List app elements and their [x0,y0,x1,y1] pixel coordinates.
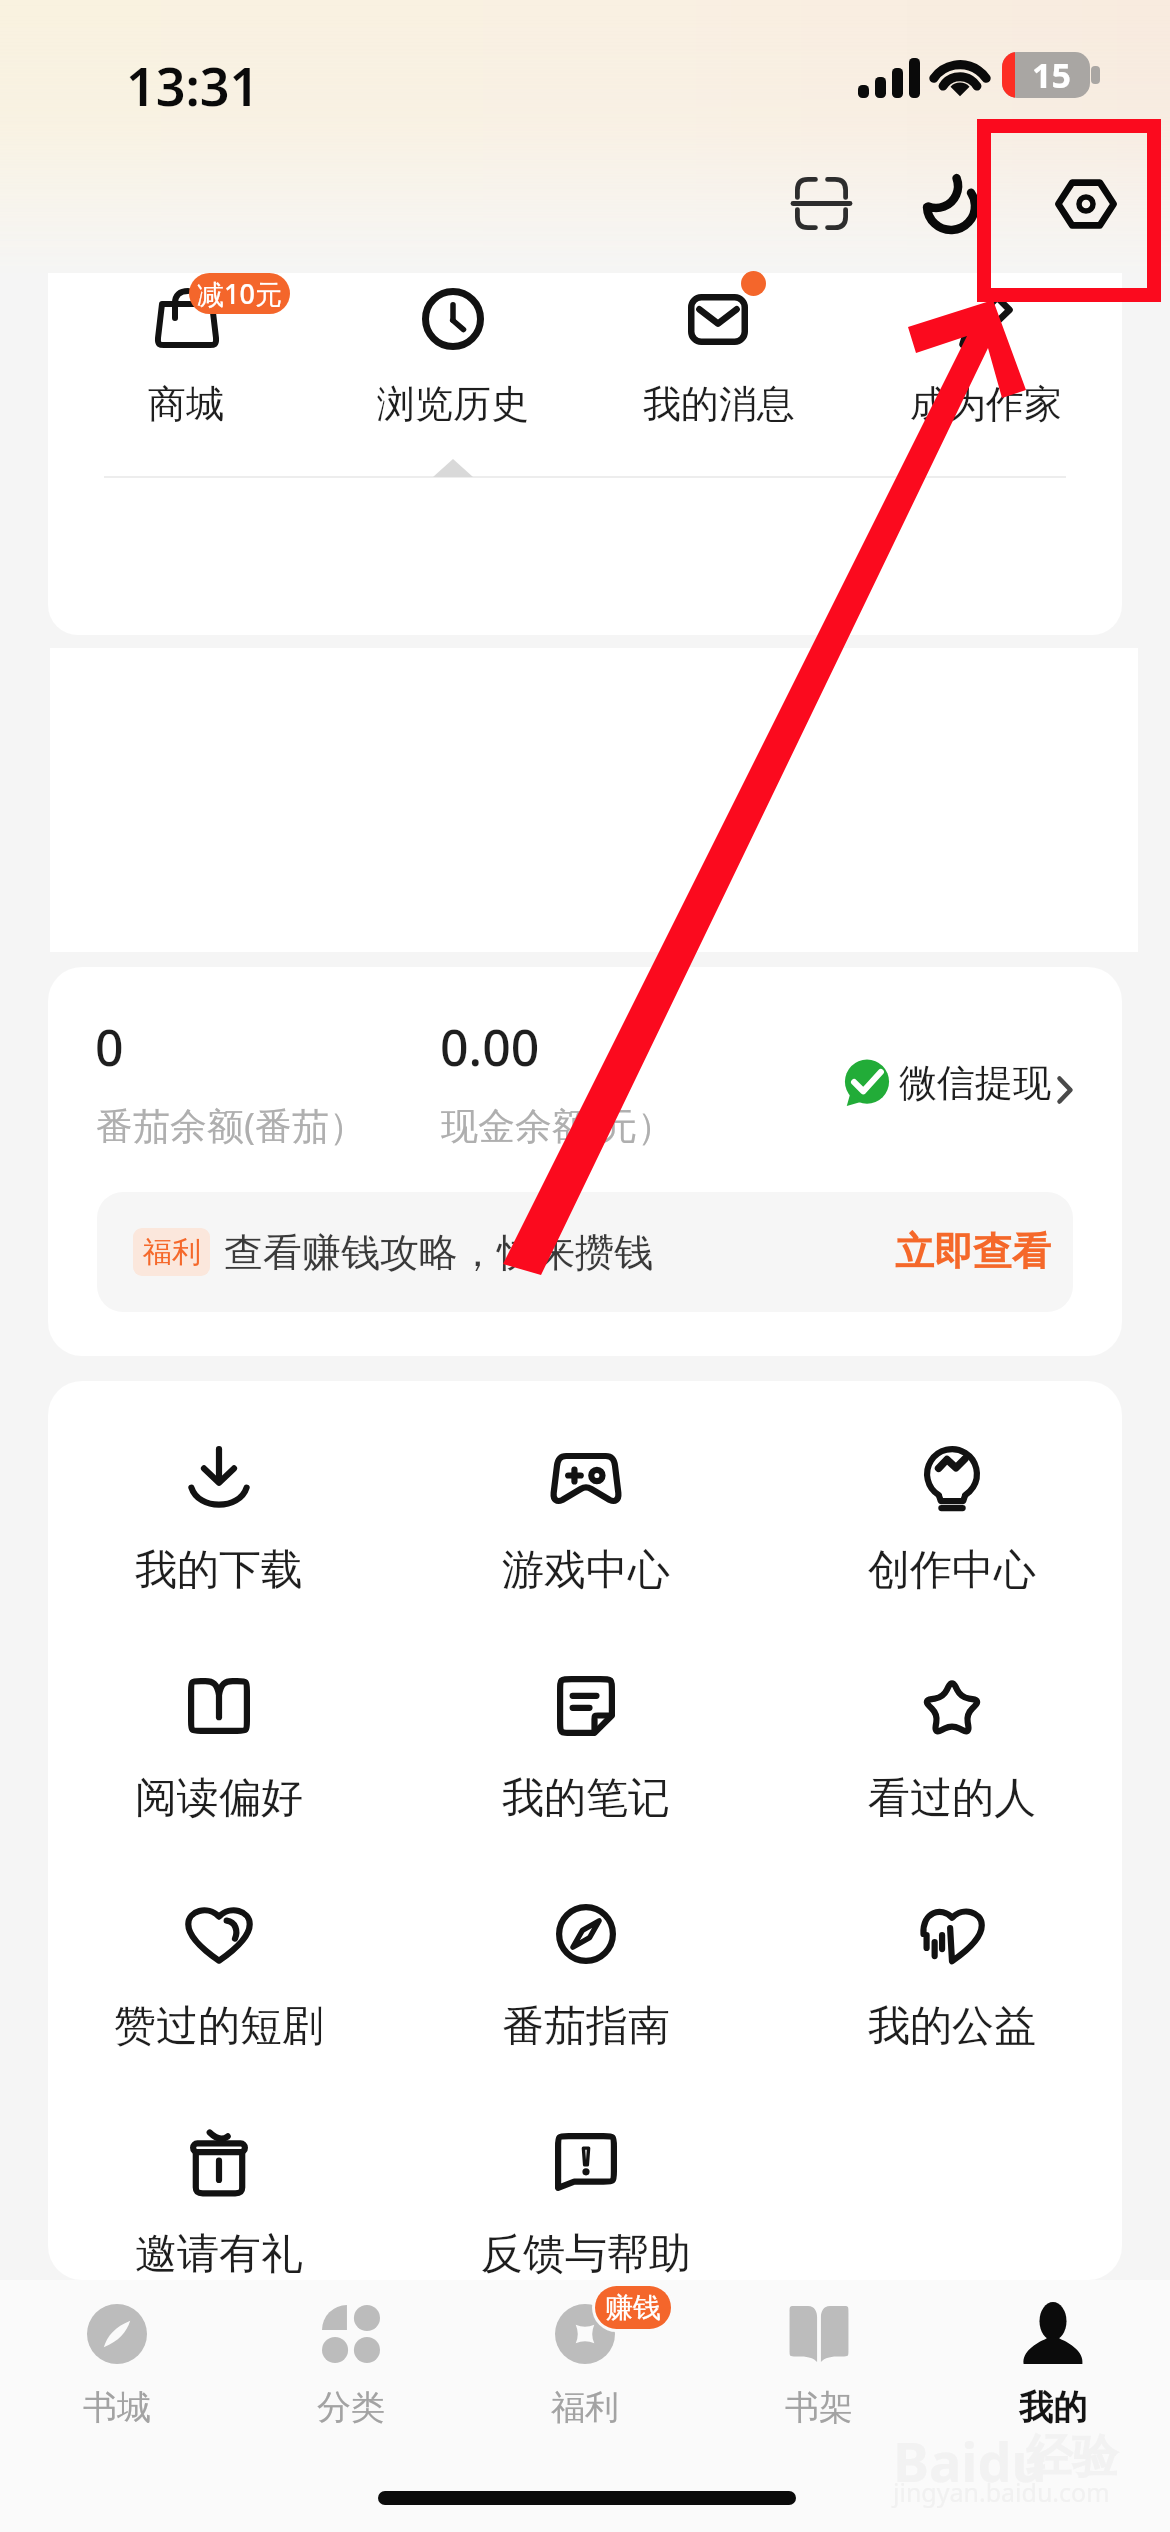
button[interactable] [856,283,1116,433]
staticText: 赞过的短剧 [114,2000,324,2053]
staticText: 成为作家 [910,380,1062,428]
button[interactable] [49,2084,389,2284]
staticText: 浏览历史 [377,380,529,428]
button[interactable] [49,1856,389,2056]
staticText: 分类 [317,2386,385,2429]
button[interactable]: Scan [760,141,884,265]
staticText: 赚钱 [605,2290,661,2325]
staticText: 书架 [785,2386,853,2429]
staticText: 我的 [1019,2386,1087,2429]
button[interactable] [323,283,583,433]
button[interactable]: 福利 [97,1192,1073,1312]
staticText: 现金余额(元） [441,1099,675,1150]
button[interactable] [416,2084,756,2284]
button[interactable] [0,2285,234,2445]
button[interactable] [234,2285,468,2445]
staticText: 商城 [148,380,224,428]
staticText: 0 [95,1013,124,1081]
staticText: 经验 [1026,2428,1118,2486]
staticText: 我的公益 [868,2000,1036,2053]
button[interactable] [936,2285,1170,2445]
button[interactable] [468,2285,702,2445]
button[interactable] [589,283,849,433]
staticText: 我的下载 [135,1544,303,1597]
staticText: 减10元 [197,275,282,312]
button[interactable] [782,1400,1122,1600]
staticText: 13:31 [126,50,260,121]
staticText: 游戏中心 [502,1544,670,1597]
staticText: 我的笔记 [502,1772,670,1825]
staticText: 反馈与帮助 [481,2228,691,2281]
staticText: 15 [1032,52,1071,98]
staticText: 0.00 [440,1013,540,1081]
staticText: 阅读偏好 [135,1772,303,1825]
staticText: 微信提现 [899,1059,1051,1107]
button[interactable] [416,1856,756,2056]
staticText: 立即查看 [895,1227,1051,1276]
staticText: 邀请有礼 [135,2228,303,2281]
staticText: 番茄余额(番茄） [96,1099,367,1150]
button[interactable] [49,1400,389,1600]
staticText: Baidu [893,2424,1047,2498]
button[interactable]: 微信提现 [836,1044,1086,1106]
button[interactable]: Night mode [890,140,1014,264]
staticText: 看过的人 [868,1772,1036,1825]
staticText: 我的消息 [643,380,795,428]
button[interactable] [782,1628,1122,1828]
button[interactable] [49,1628,389,1828]
staticText: 番茄指南 [502,2000,670,2053]
button[interactable] [782,1856,1122,2056]
staticText: 查看赚钱攻略，快来攒钱 [224,1228,653,1277]
staticText: 福利 [143,1234,201,1271]
button[interactable] [702,2285,936,2445]
staticText: 创作中心 [868,1544,1036,1597]
button[interactable] [416,1628,756,1828]
staticText: 书城 [83,2386,151,2429]
staticText: 福利 [551,2386,619,2429]
button[interactable] [56,283,316,433]
button[interactable] [416,1400,756,1600]
button[interactable]: Settings [1024,141,1148,265]
staticText: jingyan.baidu.com [893,2475,1110,2509]
